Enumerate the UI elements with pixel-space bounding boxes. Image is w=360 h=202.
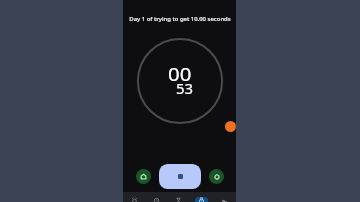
button[interactable]: Stop <box>159 164 201 189</box>
button[interactable]: Timer <box>167 192 190 202</box>
button[interactable]: Record lap <box>225 121 236 132</box>
staticText: Day 1 of trying to get 10.00 seconds <box>129 15 231 23</box>
button[interactable]: Stopwatch <box>190 192 213 202</box>
staticText: 53 <box>176 80 194 98</box>
button[interactable]: Target <box>209 169 224 184</box>
button[interactable]: Clock <box>145 192 167 202</box>
staticText: 00 <box>168 62 191 87</box>
button[interactable]: Alarm <box>123 192 145 202</box>
button[interactable]: Bedtime <box>213 192 236 202</box>
button[interactable]: Home <box>136 169 151 184</box>
